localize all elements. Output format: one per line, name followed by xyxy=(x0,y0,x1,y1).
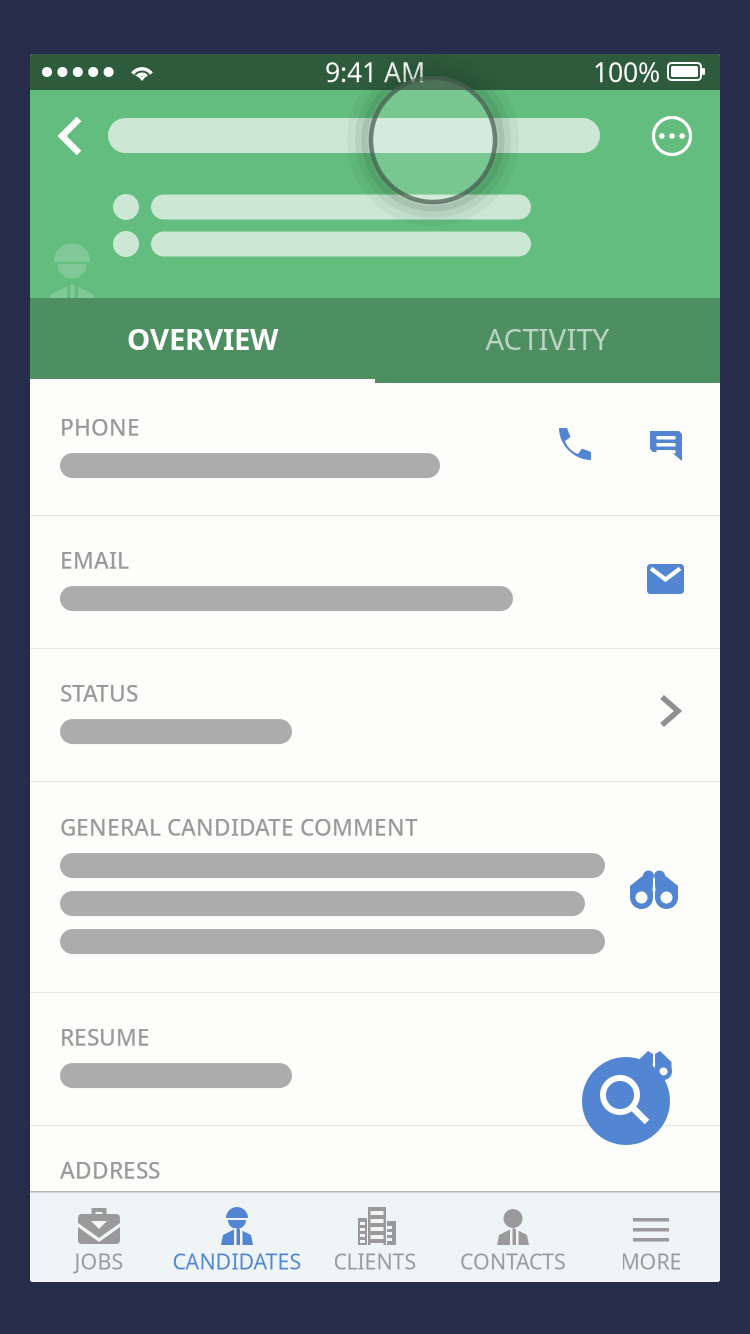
button[interactable]: CANDIDATES xyxy=(168,1191,306,1282)
button[interactable]: MORE xyxy=(582,1191,720,1282)
staticText: CONTACTS xyxy=(460,1247,566,1275)
button[interactable]: CLIENTS xyxy=(306,1191,444,1282)
staticText: STATUS xyxy=(60,678,138,708)
staticText: 100% xyxy=(593,54,660,90)
button[interactable]: OVERVIEW xyxy=(30,298,375,379)
button[interactable]: Back xyxy=(43,107,99,165)
button[interactable]: Status details xyxy=(654,690,688,732)
staticText: ACTIVITY xyxy=(485,319,609,358)
button[interactable]: CONTACTS xyxy=(444,1191,582,1282)
staticText: PHONE xyxy=(60,412,140,442)
button[interactable]: Search xyxy=(582,1047,678,1147)
staticText: MORE xyxy=(620,1247,681,1275)
button[interactable]: More options xyxy=(644,108,700,164)
button[interactable]: Send email xyxy=(644,557,688,599)
staticText: RESUME xyxy=(60,1022,150,1052)
staticText: ADDRESS xyxy=(60,1155,160,1185)
staticText: GENERAL CANDIDATE COMMENT xyxy=(60,812,418,842)
staticText: 9:41 AM xyxy=(325,54,425,90)
staticText: OVERVIEW xyxy=(127,319,278,358)
staticText: CANDIDATES xyxy=(172,1247,301,1275)
button[interactable]: ACTIVITY xyxy=(375,298,720,379)
button[interactable]: Call xyxy=(553,424,597,466)
staticText: EMAIL xyxy=(60,545,129,575)
button[interactable]: JOBS xyxy=(30,1191,168,1282)
button[interactable]: View comment xyxy=(638,862,688,904)
staticText: CLIENTS xyxy=(333,1247,416,1275)
staticText: JOBS xyxy=(74,1247,123,1275)
button[interactable]: Send message xyxy=(644,424,688,466)
